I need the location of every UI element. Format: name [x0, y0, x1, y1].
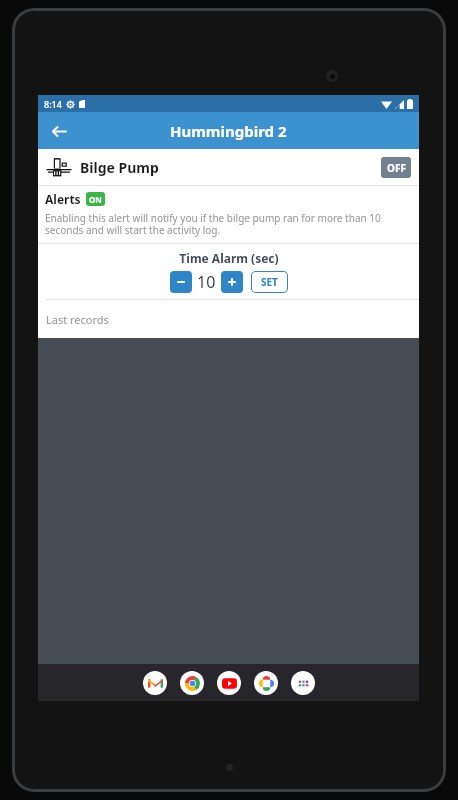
button[interactable]: Bilge Pump [38, 149, 419, 185]
button[interactable]: Alerts [45, 191, 105, 207]
button[interactable]: All apps [291, 671, 315, 695]
button[interactable]: Decrease [170, 271, 192, 293]
button[interactable]: YouTube [217, 671, 241, 695]
staticText: SET [261, 275, 278, 289]
staticText: Hummingbird 2 [170, 121, 287, 141]
button[interactable]: OFF [381, 157, 411, 178]
staticText: 8:14 [44, 98, 62, 110]
staticText: Time Alarm (sec) [179, 250, 279, 266]
staticText: ON [89, 194, 102, 205]
button[interactable]: Chrome [180, 671, 204, 695]
button[interactable]: Back [42, 114, 76, 148]
button[interactable]: Increase [221, 271, 243, 293]
button[interactable]: Photos [254, 671, 278, 695]
staticText: 10 [197, 271, 216, 293]
staticText: Last records [46, 312, 109, 327]
button[interactable]: SET [251, 271, 288, 293]
staticText: Bilge Pump [80, 158, 159, 177]
staticText: OFF [387, 161, 406, 175]
staticText: Alerts [45, 191, 81, 207]
staticText: Enabling this alert will notify you if t… [45, 211, 411, 237]
button[interactable]: Last records [38, 300, 419, 338]
button[interactable]: Gmail [143, 671, 167, 695]
